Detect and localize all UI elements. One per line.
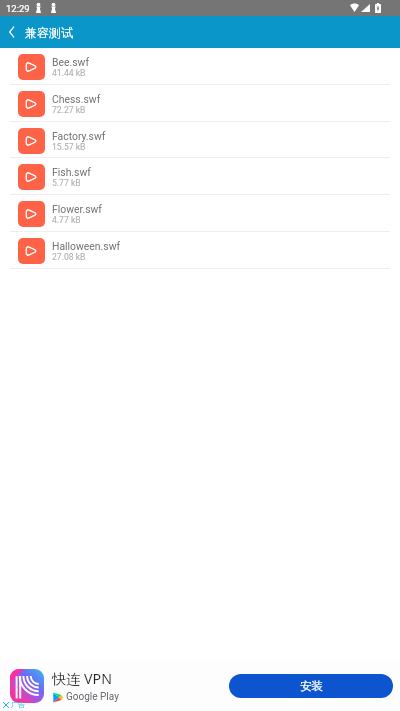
staticText: Chess.swf xyxy=(52,93,101,105)
button[interactable]: Halloween.swf xyxy=(0,233,400,270)
staticText: Fish.swf xyxy=(52,166,91,178)
button[interactable]: Factory.swf xyxy=(0,123,400,159)
staticText: 15.57 kB xyxy=(52,142,86,152)
staticText: Factory.swf xyxy=(52,130,106,142)
button[interactable]: Back xyxy=(0,16,22,48)
staticText: Bee.swf xyxy=(52,56,90,68)
staticText: 72.27 kB xyxy=(52,105,86,115)
button[interactable]: Fish.swf xyxy=(0,159,400,196)
staticText: 27.08 kB xyxy=(52,252,86,262)
staticText: 广告 xyxy=(11,700,25,709)
button[interactable]: 安装 xyxy=(229,674,393,698)
staticText: 4.77 kB xyxy=(52,215,81,225)
staticText: Halloween.swf xyxy=(52,240,121,252)
staticText: 兼容测试 xyxy=(25,25,73,40)
button[interactable]: Bee.swf xyxy=(0,48,400,86)
staticText: 安装 xyxy=(300,679,323,693)
staticText: 5.77 kB xyxy=(52,178,81,188)
staticText: 12:29 xyxy=(6,3,30,14)
staticText: 快连 VPN xyxy=(52,669,112,688)
staticText: 41.44 kB xyxy=(52,68,86,78)
staticText: Google Play xyxy=(66,691,119,703)
staticText: Flower.swf xyxy=(52,203,102,215)
button[interactable]: Flower.swf xyxy=(0,196,400,233)
button[interactable]: Chess.swf xyxy=(0,86,400,123)
